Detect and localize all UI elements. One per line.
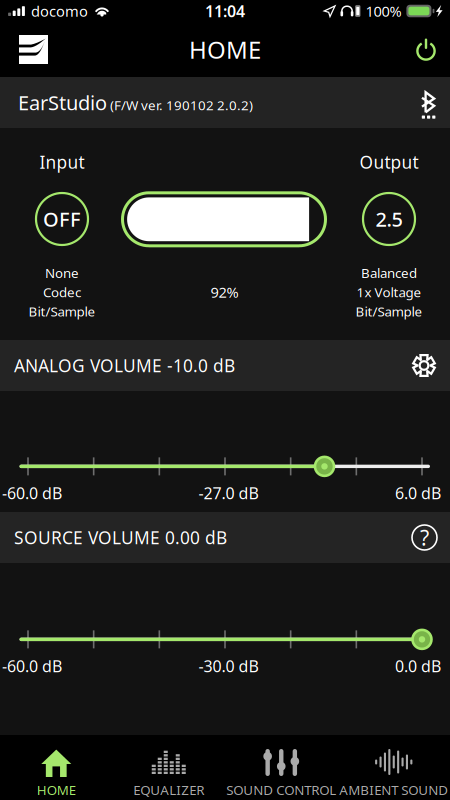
- button[interactable]: Volume slider: [412, 630, 431, 649]
- staticText: Bit/Sample: [28, 302, 95, 320]
- staticText: SOURCE VOLUME 0.00 dB: [14, 526, 227, 549]
- staticText: SOUND CONTROL: [226, 781, 336, 799]
- staticText: (F/W ver. 190102 2.0.2): [107, 96, 253, 114]
- staticText: Output: [359, 150, 418, 173]
- button[interactable]: Bluetooth: [409, 79, 450, 126]
- staticText: Codec: [43, 283, 81, 301]
- button[interactable]: Menu: [0, 22, 62, 77]
- staticText: HOME: [189, 34, 261, 65]
- button[interactable]: Volume slider: [315, 457, 334, 476]
- button[interactable]: HOME: [0, 735, 112, 800]
- staticText: 92%: [210, 282, 238, 302]
- staticText: ANALOG VOLUME -10.0 dB: [14, 354, 235, 377]
- button[interactable]: SOUND CONTROL: [225, 735, 337, 800]
- staticText: -60.0 dB: [2, 655, 62, 677]
- staticText: 2.5: [375, 206, 402, 232]
- staticText: 1x Voltage: [356, 283, 421, 301]
- button[interactable]: AMBIENT SOUND: [337, 735, 450, 800]
- staticText: docomo: [31, 1, 88, 21]
- button[interactable]: Power: [401, 22, 450, 76]
- staticText: AMBIENT SOUND: [339, 781, 448, 799]
- staticText: Balanced: [361, 264, 417, 282]
- staticText: HOME: [37, 781, 76, 799]
- button[interactable]: EQUALIZER: [112, 735, 225, 800]
- button[interactable]: Settings: [395, 339, 450, 391]
- staticText: 6.0 dB: [395, 482, 441, 504]
- staticText: 100%: [365, 1, 401, 21]
- staticText: None: [45, 264, 79, 282]
- staticText: -30.0 dB: [198, 655, 258, 677]
- staticText: 0.0 dB: [395, 655, 441, 677]
- staticText: -27.0 dB: [198, 482, 258, 504]
- staticText: 11:04: [205, 0, 245, 22]
- staticText: OFF: [43, 206, 81, 232]
- button[interactable]: Help: [396, 512, 450, 563]
- staticText: EQUALIZER: [133, 781, 204, 799]
- staticText: -60.0 dB: [2, 482, 62, 504]
- staticText: Bit/Sample: [355, 302, 422, 320]
- staticText: ?: [420, 523, 429, 552]
- staticText: EarStudio: [18, 89, 107, 116]
- staticText: Input: [39, 150, 84, 173]
